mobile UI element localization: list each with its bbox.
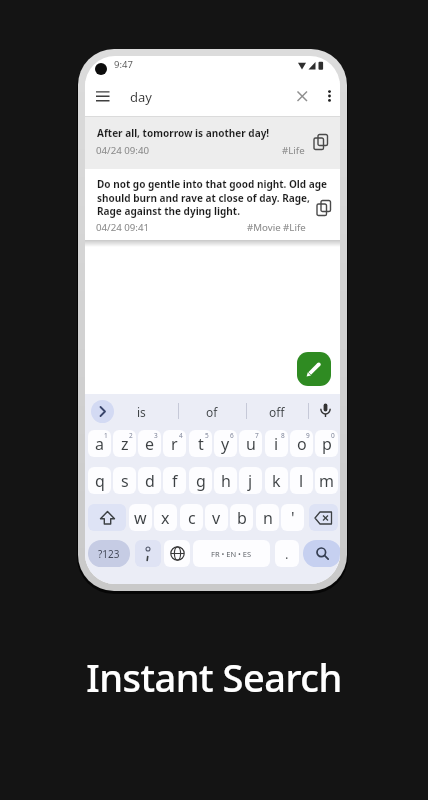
button[interactable]: d — [138, 467, 161, 494]
staticText: t — [198, 433, 204, 455]
staticText: 9 — [306, 431, 310, 440]
button[interactable]: After all, tomorrow is another day! — [85, 117, 340, 169]
staticText: p — [322, 433, 332, 455]
staticText: #Life — [282, 144, 305, 157]
button[interactable]: is — [137, 404, 146, 420]
staticText: o — [297, 433, 307, 455]
staticText: l — [299, 470, 304, 492]
button[interactable]: ?123 — [88, 540, 130, 567]
button[interactable]: t — [189, 430, 212, 457]
staticText: 0 — [331, 431, 335, 440]
staticText: e — [145, 433, 155, 455]
staticText: 1 — [104, 431, 108, 440]
button[interactable]: a — [88, 430, 111, 457]
staticText: FR • EN • ES — [211, 549, 252, 559]
staticText: d — [145, 470, 155, 492]
staticText: 8 — [281, 431, 285, 440]
staticText: Do not go gentle into that good night. O… — [97, 177, 328, 218]
button[interactable]: o — [290, 430, 313, 457]
button[interactable]: b — [230, 504, 253, 531]
button[interactable]: v — [205, 504, 228, 531]
staticText: m — [319, 470, 334, 492]
button[interactable]: p — [315, 430, 338, 457]
staticText: 2 — [129, 431, 133, 440]
staticText: 04/24 09:40 — [96, 144, 150, 157]
button[interactable]: c — [180, 504, 203, 531]
button[interactable] — [88, 504, 126, 531]
button[interactable]: q — [88, 467, 111, 494]
staticText: v — [212, 507, 221, 529]
button[interactable]: m — [315, 467, 338, 494]
button[interactable]: . — [275, 540, 299, 567]
staticText: i — [274, 433, 279, 455]
staticText: b — [237, 507, 247, 529]
staticText: k — [272, 470, 281, 492]
button[interactable] — [303, 540, 340, 567]
button[interactable] — [309, 504, 338, 531]
staticText: w — [134, 507, 147, 529]
button[interactable]: f — [163, 467, 186, 494]
staticText: . — [285, 545, 289, 563]
staticText: 9:47 — [114, 58, 133, 71]
staticText: 5 — [205, 431, 209, 440]
staticText: ?123 — [98, 547, 120, 561]
button[interactable]: l — [290, 467, 313, 494]
button[interactable]: w — [129, 504, 152, 531]
staticText: x — [161, 507, 170, 529]
staticText: q — [95, 470, 105, 492]
staticText: day — [130, 88, 152, 106]
staticText: Instant Search — [0, 651, 428, 703]
staticText: r — [171, 433, 178, 455]
staticText: h — [221, 470, 231, 492]
button[interactable]: r — [163, 430, 186, 457]
staticText: 4 — [179, 431, 183, 440]
button[interactable]: ' — [281, 504, 304, 531]
button[interactable]: s — [113, 467, 136, 494]
button[interactable] — [135, 540, 161, 567]
button[interactable] — [85, 81, 340, 115]
staticText: 6 — [230, 431, 234, 440]
button[interactable]: of — [206, 404, 218, 420]
button[interactable]: k — [265, 467, 288, 494]
staticText: z — [121, 433, 129, 455]
button[interactable]: u — [239, 430, 262, 457]
button[interactable]: e — [138, 430, 161, 457]
staticText: u — [246, 433, 256, 455]
button[interactable]: z — [113, 430, 136, 457]
button[interactable]: j — [239, 467, 262, 494]
staticText: c — [188, 507, 196, 529]
button[interactable] — [91, 400, 114, 423]
button[interactable]: y — [214, 430, 237, 457]
button[interactable]: off — [269, 404, 285, 420]
staticText: a — [95, 433, 104, 455]
staticText: 04/24 09:41 — [96, 221, 150, 234]
staticText: #Movie #Life — [247, 221, 306, 234]
staticText: ' — [291, 507, 295, 529]
staticText: j — [248, 470, 253, 492]
staticText: 3 — [154, 431, 158, 440]
button[interactable] — [319, 403, 332, 419]
button[interactable]: g — [189, 467, 212, 494]
button[interactable]: Do not go gentle into that good night. O… — [85, 169, 340, 240]
button[interactable] — [297, 352, 331, 386]
button[interactable]: n — [256, 504, 279, 531]
staticText: 7 — [255, 431, 259, 440]
staticText: After all, tomorrow is another day! — [97, 126, 270, 140]
button[interactable]: FR • EN • ES — [193, 540, 270, 567]
staticText: f — [172, 470, 178, 492]
button[interactable] — [164, 540, 190, 567]
button[interactable]: h — [214, 467, 237, 494]
staticText: g — [196, 470, 206, 492]
button[interactable]: i — [265, 430, 288, 457]
staticText: s — [121, 470, 129, 492]
staticText: n — [263, 507, 273, 529]
staticText: y — [221, 433, 230, 455]
button[interactable]: x — [154, 504, 177, 531]
